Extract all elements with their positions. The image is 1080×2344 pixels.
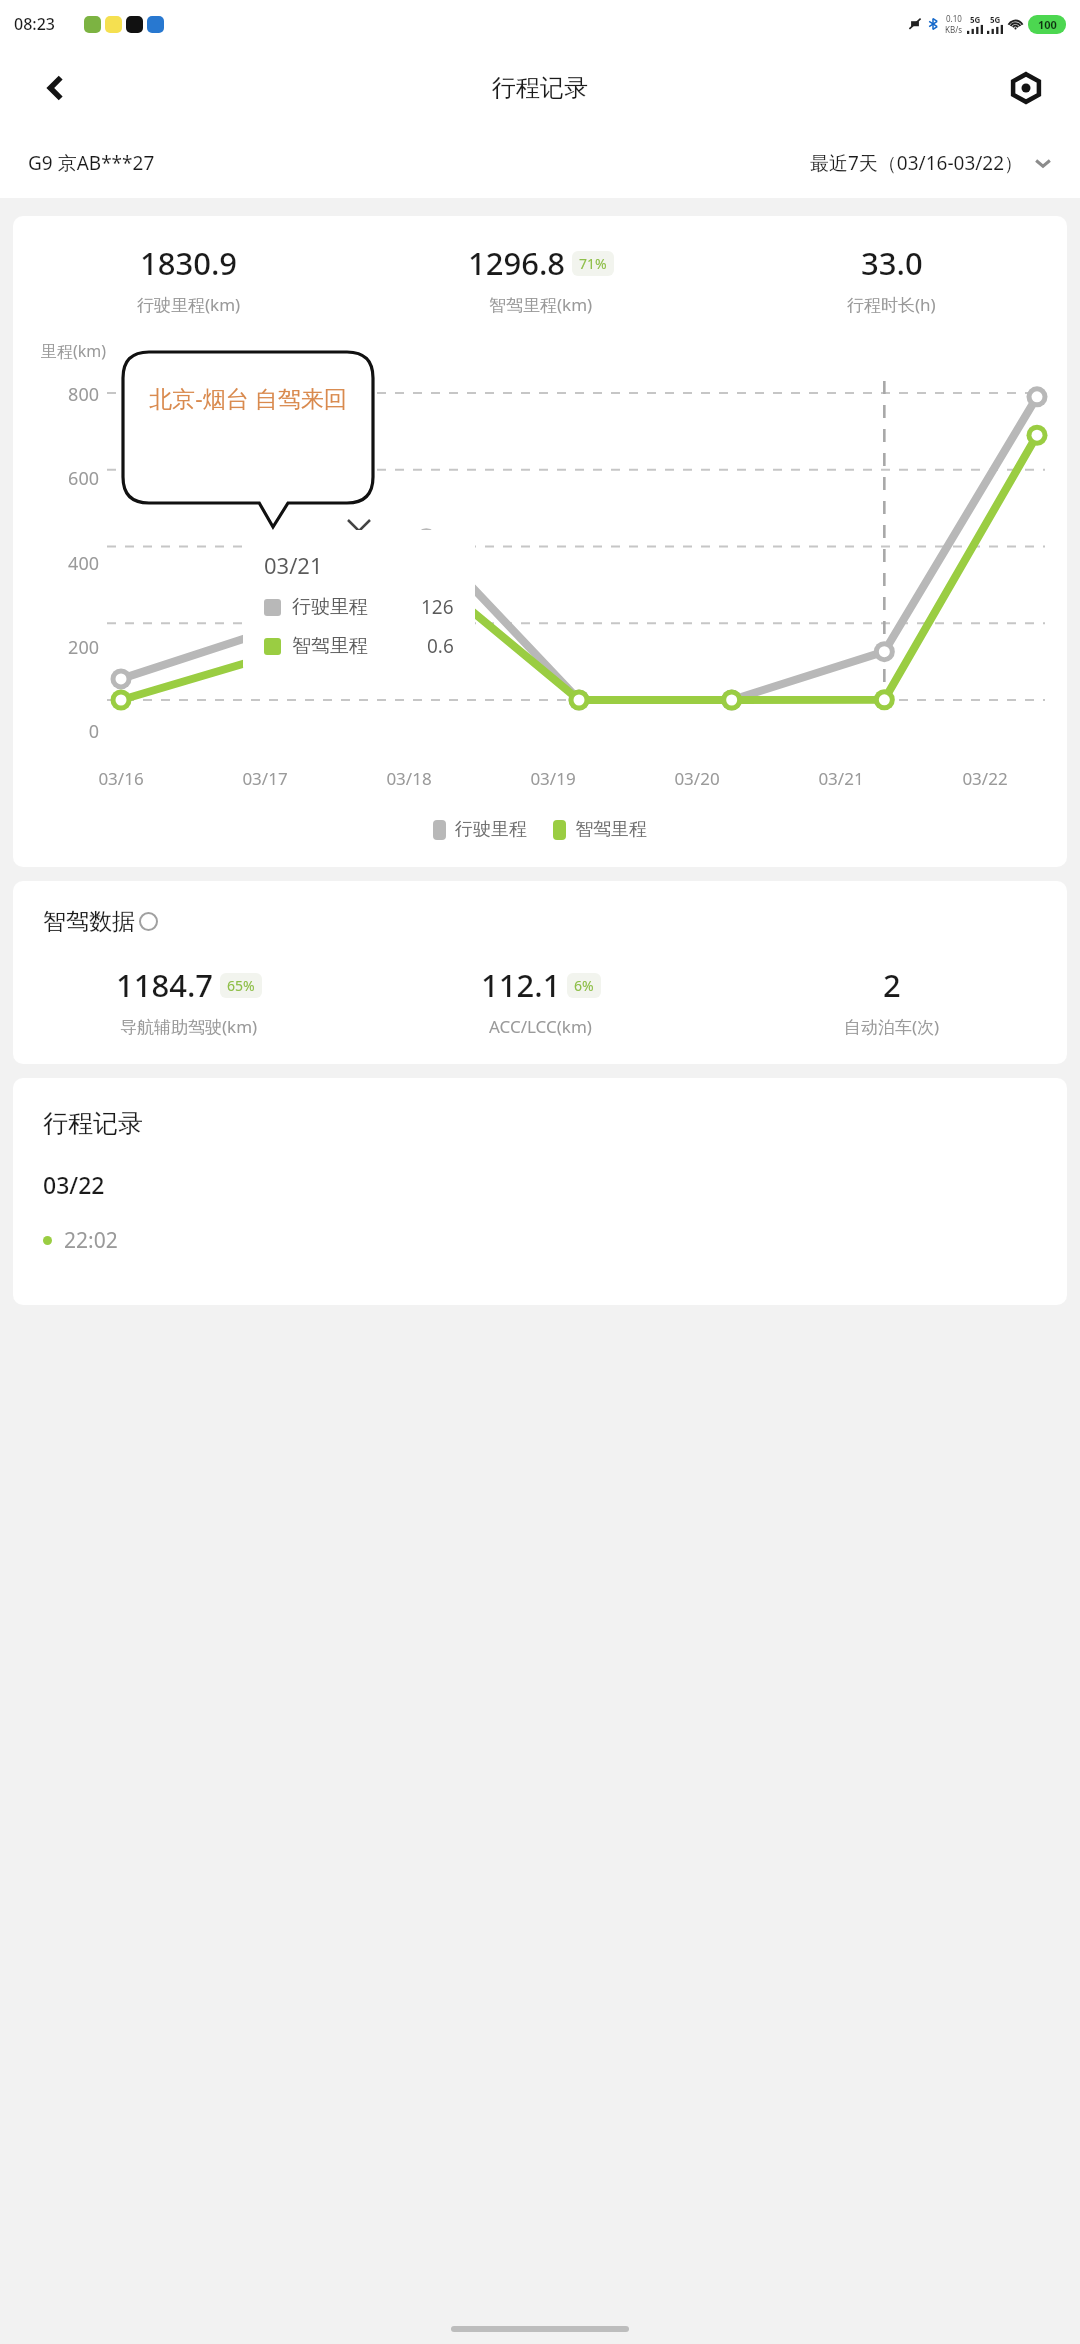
staticText: 03/18 xyxy=(337,767,481,790)
staticText: 导航辅助驾驶(km) xyxy=(120,1015,258,1038)
staticText: 行程记录 xyxy=(492,73,588,103)
staticText: 03/22 xyxy=(913,767,1057,790)
staticText: 行驶里程 xyxy=(455,818,527,841)
button[interactable]: 1184.7 xyxy=(13,964,365,1038)
staticText: 行驶里程(km) xyxy=(137,293,241,316)
button[interactable]: 112.1 xyxy=(365,964,716,1038)
staticText: 22:02 xyxy=(64,1226,118,1255)
button[interactable]: G9 京AB***27 xyxy=(28,150,155,176)
staticText: 行驶里程 xyxy=(292,595,368,619)
staticText: 126 xyxy=(421,594,454,620)
staticText: KB/s xyxy=(945,24,962,35)
button[interactable]: 03/21 xyxy=(243,530,475,679)
button[interactable]: 22:02 xyxy=(43,1226,1067,1255)
staticText: 03/16 xyxy=(49,767,193,790)
staticText: 03/20 xyxy=(625,767,769,790)
staticText: 600 xyxy=(37,466,99,491)
staticText: 智驾数据 xyxy=(43,907,135,936)
staticText: 112.1 xyxy=(481,964,561,1006)
staticText: 2 xyxy=(883,964,901,1006)
button[interactable]: 智驾里程 xyxy=(553,818,647,841)
staticText: 5G xyxy=(990,14,1001,25)
staticText: 800 xyxy=(37,382,99,407)
staticText: 0.6 xyxy=(427,633,454,659)
button[interactable]: 1830.9 xyxy=(13,242,365,316)
staticText: 5G xyxy=(970,14,981,25)
staticText: 03/22 xyxy=(43,1169,105,1200)
staticText: 71% xyxy=(579,254,607,273)
staticText: 智驾里程 xyxy=(292,634,368,658)
staticText: 03/17 xyxy=(193,767,337,790)
staticText: 0.10 xyxy=(946,13,962,24)
staticText: 1830.9 xyxy=(140,242,238,284)
button[interactable]: 最近7天（03/16-03/22） xyxy=(810,150,1052,176)
staticText: 200 xyxy=(37,635,99,660)
button[interactable]: 1296.8 xyxy=(365,242,716,316)
button[interactable]: 行驶里程 xyxy=(433,818,527,841)
staticText: 1184.7 xyxy=(116,964,214,1006)
staticText: 03/21 xyxy=(769,767,913,790)
staticText: 行程记录 xyxy=(43,1108,143,1139)
staticText: 100 xyxy=(1038,17,1057,32)
button[interactable]: 33.0 xyxy=(716,242,1067,316)
staticText: 里程(km) xyxy=(41,340,107,362)
staticText: 33.0 xyxy=(861,242,923,284)
staticText: G9 京AB***27 xyxy=(28,150,155,176)
staticText: 1296.8 xyxy=(468,242,566,284)
button[interactable]: 2 xyxy=(716,964,1067,1038)
staticText: 行程时长(h) xyxy=(847,293,936,316)
staticText: 6% xyxy=(574,976,594,995)
button[interactable]: 智驾数据 xyxy=(43,907,158,936)
staticText: 400 xyxy=(37,551,99,576)
staticText: 03/19 xyxy=(481,767,625,790)
button[interactable]: Settings xyxy=(1000,62,1052,114)
staticText: 最近7天（03/16-03/22） xyxy=(810,150,1024,176)
staticText: 0 xyxy=(37,719,99,744)
staticText: 08:23 xyxy=(14,13,55,35)
staticText: 65% xyxy=(227,976,255,995)
staticText: 北京-烟台 自驾来回 xyxy=(149,382,347,413)
staticText: 智驾里程 xyxy=(575,818,647,841)
staticText: 自动泊车(次) xyxy=(844,1015,940,1038)
staticText: ACC/LCC(km) xyxy=(489,1015,592,1038)
staticText: 智驾里程(km) xyxy=(489,293,593,316)
staticText: 03/21 xyxy=(264,550,323,580)
button[interactable]: Back xyxy=(28,60,84,116)
